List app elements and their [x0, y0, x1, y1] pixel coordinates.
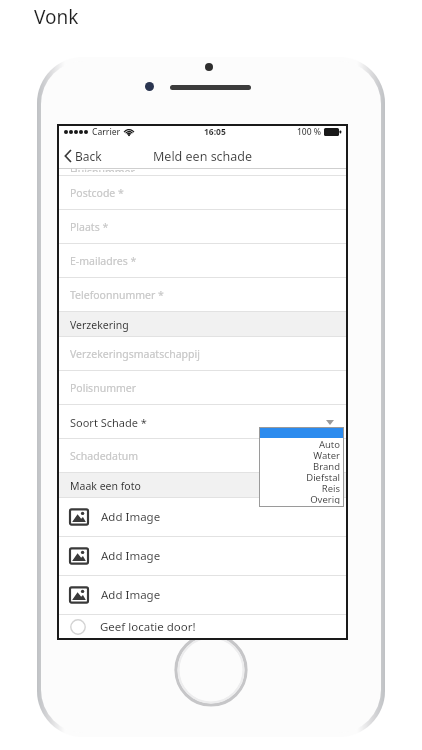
- button[interactable]: Verzekeringsmaatschappij: [59, 337, 346, 371]
- button[interactable]: Diefstal: [259, 471, 344, 482]
- staticText: 100 %: [297, 126, 322, 138]
- button[interactable]: Add image: [59, 576, 346, 614]
- staticText: Add Image: [101, 548, 161, 564]
- staticText: Brand: [313, 460, 340, 471]
- button[interactable]: Polisnummer: [59, 371, 346, 405]
- staticText: Polisnummer: [70, 381, 137, 395]
- button[interactable]: Add image: [59, 537, 346, 575]
- button[interactable]: E-mailadres *: [59, 244, 346, 278]
- staticText: Meld een schade: [153, 148, 253, 165]
- button[interactable]: Water: [259, 449, 344, 460]
- staticText: Water: [313, 449, 340, 460]
- button[interactable]: Auto: [259, 438, 344, 449]
- staticText: Schadedatum: [70, 449, 139, 463]
- staticText: E-mailadres *: [70, 254, 137, 268]
- staticText: Maak een foto: [70, 479, 141, 493]
- other: Add image: [70, 547, 88, 565]
- staticText: Add Image: [101, 587, 161, 603]
- staticText: Overig: [310, 493, 340, 504]
- button[interactable]: Schadedatum: [59, 439, 346, 473]
- staticText: Reis: [321, 482, 340, 493]
- button[interactable]: Plaats *: [59, 210, 346, 244]
- staticText: Verzekering: [70, 318, 129, 332]
- staticText: Geef locatie door!: [100, 619, 196, 635]
- staticText: Carrier: [92, 126, 121, 138]
- other: Add image: [70, 586, 88, 604]
- button[interactable]: Overig: [259, 493, 344, 504]
- staticText: Back: [75, 148, 102, 164]
- button[interactable]: [259, 427, 344, 438]
- staticText: Vonk: [34, 4, 79, 30]
- button[interactable]: Reis: [259, 482, 344, 493]
- staticText: Soort Schade *: [70, 415, 147, 430]
- other: Add image: [70, 508, 88, 526]
- staticText: Telefoonnummer *: [70, 288, 164, 302]
- staticText: Auto: [318, 438, 340, 449]
- button[interactable]: Brand: [259, 460, 344, 471]
- button[interactable]: Geef locatie door!: [59, 615, 346, 638]
- staticText: Postcode *: [70, 186, 124, 200]
- button[interactable]: Soort Schade *: [59, 405, 346, 439]
- button[interactable]: Add image: [59, 498, 346, 536]
- button[interactable]: Telefoonnummer *: [59, 278, 346, 312]
- staticText: Huisnummer: [70, 165, 135, 172]
- button[interactable]: Back: [59, 145, 110, 167]
- staticText: Add Image: [101, 509, 161, 525]
- staticText: Diefstal: [306, 471, 340, 482]
- staticText: 16:05: [204, 126, 226, 138]
- button[interactable]: Postcode *: [59, 176, 346, 210]
- staticText: Plaats *: [70, 220, 109, 234]
- staticText: Verzekeringsmaatschappij: [70, 347, 200, 361]
